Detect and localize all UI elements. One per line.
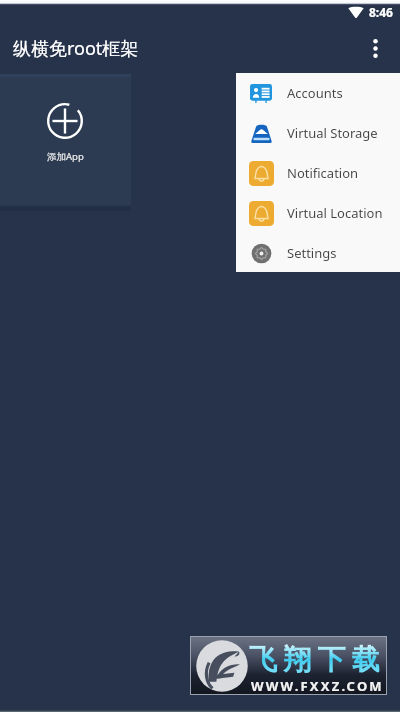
button[interactable]: 添加App	[0, 74, 131, 211]
staticText: Virtual Storage	[287, 124, 378, 142]
staticText: Virtual Location	[287, 204, 383, 222]
button[interactable]: Accounts	[236, 73, 400, 113]
button[interactable]: Settings	[236, 233, 400, 272]
staticText: 飞翔下载	[249, 642, 386, 677]
staticText: 8:46	[369, 4, 393, 20]
staticText: 添加App	[47, 150, 84, 163]
button[interactable]: Virtual Storage	[236, 113, 400, 153]
staticText: Notification	[287, 164, 359, 182]
staticText: WWW.FXXZ.COM	[251, 677, 384, 695]
button[interactable]: More options	[357, 30, 393, 66]
button[interactable]: Virtual Location	[236, 193, 400, 233]
staticText: Accounts	[287, 84, 343, 102]
button[interactable]: Notification	[236, 153, 400, 193]
staticText: Settings	[287, 244, 337, 262]
staticText: 纵横免root框架	[13, 36, 139, 61]
